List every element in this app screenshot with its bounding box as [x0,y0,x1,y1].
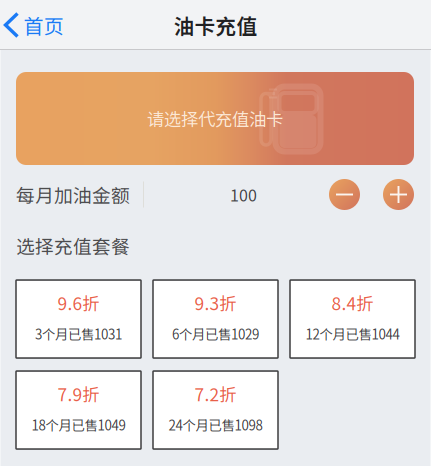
staticText: 油卡充值 [173,10,257,40]
staticText: 请选择代充值油卡 [147,106,283,131]
staticText: 7.2折 [194,381,236,406]
staticText: 9.6折 [57,290,99,315]
button[interactable]: Increase amount [383,179,414,210]
staticText: 6个月已售1029 [172,324,259,343]
button[interactable]: 9.6折 [16,280,141,358]
staticText: 每月加油金额 [16,181,130,208]
button[interactable]: 7.9折 [16,371,141,449]
button[interactable]: 8.4折 [290,280,415,358]
button[interactable]: 7.2折 [153,371,278,449]
staticText: 18个月已售1049 [31,415,125,434]
staticText: 首页 [23,10,63,39]
staticText: 9.3折 [194,290,236,315]
staticText: 12个月已售1044 [305,324,399,343]
staticText: 100 [230,183,257,206]
staticText: 3个月已售1031 [35,324,122,343]
button[interactable]: 9.3折 [153,280,278,358]
button[interactable]: Decrease amount [329,179,360,210]
staticText: 7.9折 [57,381,99,406]
button[interactable]: 首页 [0,3,73,47]
staticText: 24个月已售1098 [168,415,262,434]
staticText: 选择充值套餐 [16,232,130,259]
staticText: 8.4折 [331,290,373,315]
